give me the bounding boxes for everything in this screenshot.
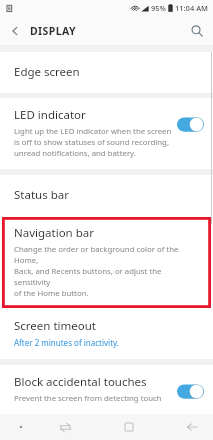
staticText: Edge screen [14, 64, 80, 80]
staticText: Status bar [14, 187, 69, 203]
staticText: 11:04 AM [175, 3, 208, 13]
button[interactable]: Navigation bar [2, 217, 211, 308]
staticText: Screen timeout [14, 318, 96, 334]
staticText: Navigation bar [14, 225, 94, 241]
staticText: DISPLAY [30, 24, 76, 38]
button[interactable]: Navigate up [0, 16, 30, 46]
button[interactable]: LED indicator [0, 98, 213, 169]
staticText: LED indicator [14, 107, 86, 123]
staticText: After 2 minutes of inactivity. [14, 337, 119, 348]
button[interactable]: Status bar [0, 175, 213, 216]
button[interactable]: Home [109, 414, 149, 440]
staticText: Change the order or background color of … [14, 244, 199, 299]
staticText: 95% [151, 3, 166, 13]
staticText: Light up the LED indicator when the scre… [14, 126, 172, 159]
staticText: Prevent the screen from detecting touch … [14, 393, 162, 404]
button[interactable]: Back [171, 414, 213, 440]
staticText: Block accidental touches [14, 374, 147, 390]
button[interactable]: Screen timeout [0, 309, 213, 359]
button[interactable]: More options [0, 414, 42, 440]
button[interactable]: Recents [42, 414, 88, 440]
button[interactable]: On [177, 117, 204, 132]
button[interactable]: Search [181, 16, 213, 46]
button[interactable]: Block accidental touches [0, 365, 213, 414]
button[interactable]: On [177, 384, 204, 399]
button[interactable]: Edge screen [0, 52, 213, 93]
